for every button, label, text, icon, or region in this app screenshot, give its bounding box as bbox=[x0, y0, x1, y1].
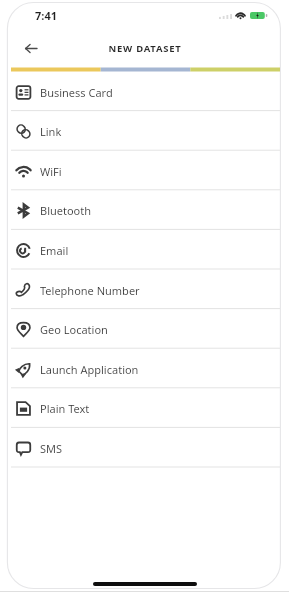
button[interactable]: WiFi bbox=[0, 151, 289, 191]
staticText: SMS bbox=[40, 441, 63, 456]
staticText: Bluetooth bbox=[40, 203, 92, 218]
staticText: Email bbox=[40, 243, 69, 258]
button[interactable]: Plain Text bbox=[0, 388, 289, 428]
staticText: Geo Location bbox=[40, 322, 108, 337]
staticText: NEW DATASET bbox=[108, 42, 182, 55]
staticText: Business Card bbox=[40, 85, 113, 100]
staticText: 7:41 bbox=[35, 8, 57, 23]
button[interactable]: Business Card bbox=[0, 72, 289, 112]
button[interactable]: Launch Application bbox=[0, 349, 289, 389]
button[interactable]: Telephone Number bbox=[0, 270, 289, 310]
staticText: Link bbox=[40, 124, 62, 139]
button[interactable]: Back bbox=[17, 34, 45, 62]
button[interactable]: Email bbox=[0, 230, 289, 270]
staticText: Plain Text bbox=[40, 401, 90, 416]
button[interactable]: SMS bbox=[0, 428, 289, 468]
staticText: WiFi bbox=[40, 164, 62, 179]
button[interactable]: Link bbox=[0, 111, 289, 151]
staticText: Telephone Number bbox=[40, 283, 140, 298]
staticText: Launch Application bbox=[40, 362, 139, 377]
button[interactable]: Bluetooth bbox=[0, 190, 289, 230]
button[interactable]: Geo Location bbox=[0, 309, 289, 349]
